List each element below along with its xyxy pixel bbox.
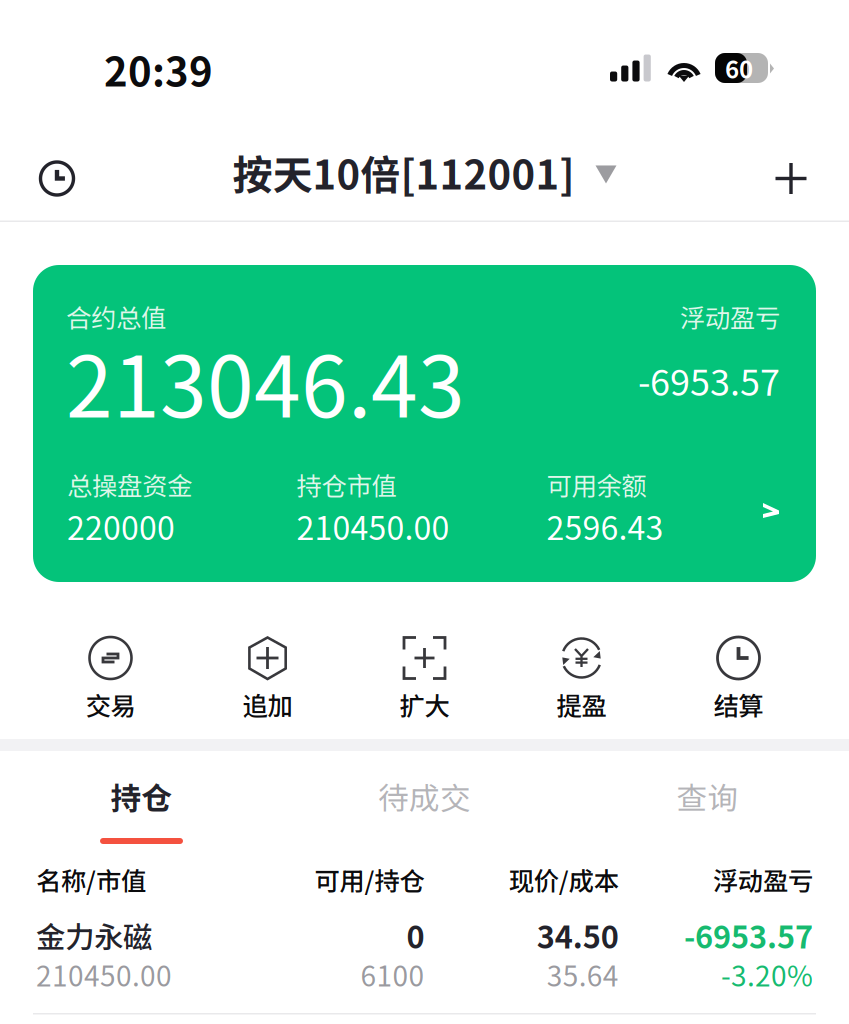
staticText: 持仓市值 xyxy=(296,466,396,503)
button[interactable]: 结算 xyxy=(660,617,817,739)
button[interactable]: 金力永磁 xyxy=(0,904,849,1014)
staticText: 可用/持仓 xyxy=(314,861,424,898)
staticText: 现价/成本 xyxy=(509,861,619,898)
staticText: 2596.43 xyxy=(546,503,663,549)
button[interactable]: History xyxy=(19,140,95,216)
staticText: 210450.00 xyxy=(36,954,172,994)
button[interactable]: 按天10倍[112001] xyxy=(232,143,616,201)
staticText: 220000 xyxy=(67,503,175,549)
staticText: 金力永磁 xyxy=(36,914,152,956)
button[interactable]: 查询 xyxy=(566,751,849,852)
button[interactable]: 合约总值 xyxy=(33,265,816,582)
staticText: 结算 xyxy=(713,686,763,723)
staticText: 210450.00 xyxy=(296,503,449,549)
staticText: 扩大 xyxy=(399,686,449,723)
staticText: 总操盘资金 xyxy=(67,466,192,503)
button[interactable]: 待成交 xyxy=(283,751,566,852)
staticText: 交易 xyxy=(85,686,135,723)
staticText: 60 xyxy=(725,51,753,85)
button[interactable]: 持仓 xyxy=(0,751,283,852)
staticText: 0 xyxy=(406,913,424,957)
staticText: 浮动盈亏 xyxy=(713,861,813,898)
staticText: 34.50 xyxy=(537,913,619,957)
staticText: 可用余额 xyxy=(546,466,646,503)
staticText: 213046.43 xyxy=(66,320,465,442)
staticText: 追加 xyxy=(242,686,292,723)
staticText: 待成交 xyxy=(378,774,471,818)
button[interactable]: 追加 xyxy=(189,617,346,739)
staticText: -6953.57 xyxy=(684,913,813,957)
button[interactable]: Add xyxy=(753,140,829,216)
staticText: 6100 xyxy=(360,954,424,994)
staticText: 查询 xyxy=(676,774,738,818)
staticText: 名称/市值 xyxy=(36,861,146,898)
staticText: 合约总值 xyxy=(66,298,166,335)
staticText: 35.64 xyxy=(547,954,619,994)
button[interactable]: 扩大 xyxy=(346,617,503,739)
staticText: 按天10倍[112001] xyxy=(232,143,574,201)
staticText: 20:39 xyxy=(104,40,213,98)
staticText: 持仓 xyxy=(110,774,172,818)
staticText: -6953.57 xyxy=(638,354,780,406)
staticText: -3.20% xyxy=(721,954,813,994)
button[interactable]: 提盈 xyxy=(503,617,660,739)
staticText: 浮动盈亏 xyxy=(680,298,780,335)
button[interactable]: 交易 xyxy=(32,617,189,739)
staticText: 提盈 xyxy=(556,686,606,723)
